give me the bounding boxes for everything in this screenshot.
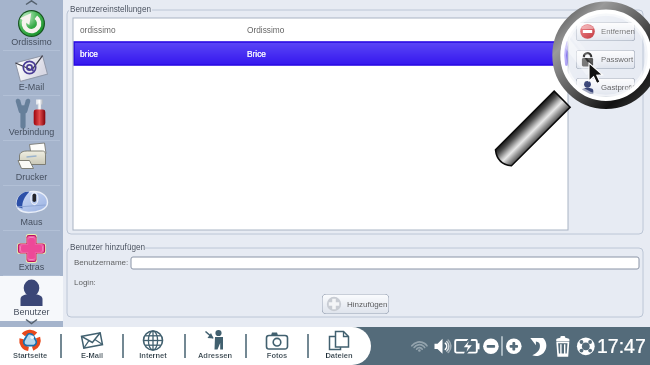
staticText: Ordissimo [247,25,285,34]
button[interactable]: Extras [0,231,63,276]
other: Magnifier [0,0,650,365]
button[interactable]: Fotos [248,327,306,365]
button[interactable]: Maus [0,186,63,231]
button[interactable]: Scroll down [0,318,63,327]
staticText: E-Mail [0,82,63,92]
button[interactable]: brice [74,42,567,65]
button[interactable]: Hinzufügen [322,294,389,314]
staticText: Extras [0,262,63,272]
staticText: Benutzer hinzufügen [70,243,146,252]
button[interactable]: Dateien [310,327,368,365]
staticText: Ordissimo [0,37,63,47]
button[interactable]: ordissimo [74,18,567,41]
staticText: Entfernen [601,27,635,36]
staticText: Maus [0,217,63,227]
button[interactable]: Gastprofil [576,78,635,97]
staticText: Benutzereinstellungen [70,5,152,14]
button[interactable]: Scroll up [0,0,63,6]
staticText: ordissimo [80,25,116,34]
button[interactable]: Ordissimo [0,6,63,51]
button[interactable]: E-Mail [0,51,63,96]
staticText: Brice [247,49,266,58]
button[interactable]: Verbindung [0,96,63,141]
staticText: Adressen [186,351,244,359]
staticText: Fotos [248,351,306,359]
staticText: Startseite [1,351,59,359]
staticText: Internet [124,351,182,359]
staticText: Verbindung [0,127,63,137]
button[interactable]: Passwort [576,50,635,69]
staticText: Benutzername: [74,258,129,267]
staticText: brice [80,49,98,58]
staticText: Gastprofil [601,83,635,92]
staticText: Passwort [601,55,634,64]
button[interactable] [131,257,639,269]
button[interactable]: Internet [124,327,182,365]
button[interactable]: Benutzer [0,276,63,321]
button[interactable]: Drucker [0,141,63,186]
staticText: Benutzer [0,307,63,317]
button[interactable]: E-Mail [63,327,121,365]
button[interactable]: Startseite [1,327,59,365]
staticText: Dateien [310,351,368,359]
staticText: E-Mail [63,351,121,359]
staticText: Hinzufügen [347,300,388,309]
staticText: 17:47 [597,335,646,357]
staticText: Drucker [0,172,63,182]
staticText: Login: [74,278,96,287]
button[interactable]: Adressen [186,327,244,365]
button[interactable]: Entfernen [576,22,635,41]
